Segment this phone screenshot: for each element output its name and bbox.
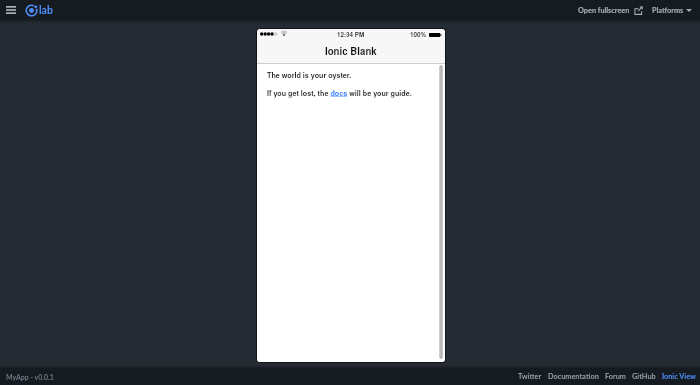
button[interactable]: Ionic View <box>659 370 700 383</box>
button[interactable]: lab <box>25 4 53 17</box>
staticText: GitHub <box>632 372 656 381</box>
staticText: Forum <box>605 372 626 381</box>
staticText: lab <box>39 4 53 17</box>
staticText: 12:34 PM <box>337 30 365 39</box>
button[interactable]: Forum <box>602 370 629 383</box>
button[interactable]: Open fullscreen <box>575 3 646 18</box>
staticText: 100% <box>410 30 427 39</box>
staticText: MyApp - v0.0.1 <box>6 373 54 381</box>
staticText: Open fullscreen <box>578 6 630 15</box>
button[interactable]: GitHub <box>629 370 659 383</box>
staticText: If you get lost, the docs will be your g… <box>267 88 412 98</box>
staticText: The world is your oyster. <box>267 70 352 80</box>
staticText: Documentation <box>548 372 599 381</box>
button[interactable]: Menu <box>2 0 20 20</box>
button[interactable]: Twitter <box>515 370 545 383</box>
staticText: Twitter <box>518 372 542 381</box>
staticText: Ionic View <box>662 372 696 381</box>
other: Open fullscreen <box>634 6 643 15</box>
staticText: Ionic Blank <box>325 44 377 58</box>
button[interactable]: Documentation <box>545 370 602 383</box>
button[interactable]: Platforms <box>649 3 700 18</box>
staticText: Platforms <box>652 6 684 15</box>
other: Wi-Fi <box>281 31 287 36</box>
